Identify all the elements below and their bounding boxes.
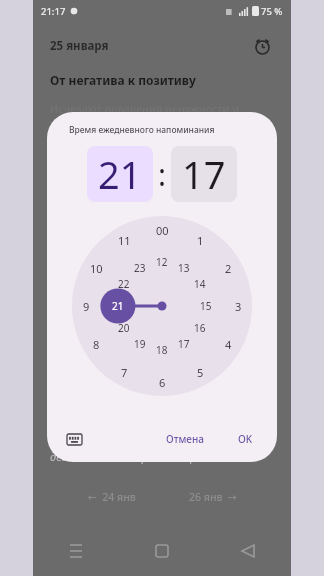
staticText: 3 [235,299,242,314]
staticText: 13 [178,261,190,275]
staticText: 00 [156,223,169,238]
staticText: 8 [93,337,100,352]
staticText: OK [238,432,253,446]
staticText: : [158,154,167,195]
staticText: 17 [178,337,190,351]
staticText: ← 24 янв [88,490,136,504]
staticText: 21 [112,299,124,313]
button[interactable]: Отмена [156,426,214,452]
button[interactable]: 17 [171,146,237,202]
staticText: 20 [118,321,130,335]
staticText: 26 янв → [189,490,237,504]
staticText: Время ежедневного напоминания [69,124,215,136]
staticText: Отмена [166,432,204,446]
staticText: 16 [194,321,206,335]
button[interactable]: Меню [33,534,119,568]
button[interactable]: 26 янв → [162,490,263,504]
staticText: 5 [197,365,204,380]
staticText: 9 [83,299,90,314]
staticText: 2 [225,261,232,276]
button[interactable]: Главная [119,534,205,568]
staticText: Сегодня с Божьей помощью я буду действов… [50,434,246,464]
staticText: 14 [194,277,206,291]
staticText: 22 [118,277,130,291]
staticText: 7 [121,365,128,380]
button[interactable]: ← 24 янв [61,490,162,504]
staticText: 25 января [50,38,109,54]
staticText: 12 [156,255,168,269]
staticText: 21 [98,148,142,200]
staticText: 23 [134,261,146,275]
staticText: 15 [200,299,212,313]
staticText: 75 % [261,5,283,18]
staticText: 11 [118,233,131,248]
staticText: 10 [90,261,103,276]
staticText: От негатива к позитиву [50,72,196,88]
staticText: 21:17 [41,5,66,18]
staticText: 19 [134,337,146,351]
button[interactable]: 21 [87,146,153,202]
button[interactable]: Назад [205,534,291,568]
button[interactable]: OK [228,426,263,452]
button[interactable]: Ввод с клавиатуры [61,426,87,452]
staticText: 6 [159,375,166,390]
staticText: 17 [182,148,226,200]
button[interactable]: Будильник [250,34,274,58]
staticText: 4 [225,337,232,352]
staticText: 1 [197,233,204,248]
staticText: Исчезают ощущения ненужности и жалости к [50,101,274,131]
staticText: 18 [156,343,168,357]
